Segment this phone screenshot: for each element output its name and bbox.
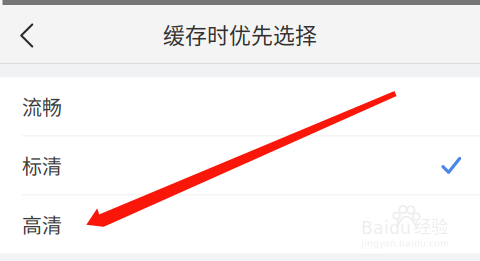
button[interactable]: 流畅 bbox=[0, 77, 480, 135]
staticText: 高清 bbox=[22, 210, 62, 239]
staticText: Baidu bbox=[361, 218, 411, 238]
staticText: 标清 bbox=[22, 151, 62, 180]
staticText: 流畅 bbox=[22, 92, 62, 121]
staticText: 缓存时优先选择 bbox=[163, 18, 317, 50]
button[interactable]: 标清 bbox=[0, 136, 480, 194]
button[interactable]: 高清 bbox=[0, 195, 480, 253]
button[interactable]: Back bbox=[5, 10, 49, 57]
staticText: jingyan.baidu.com bbox=[361, 238, 449, 249]
staticText: 经验 bbox=[414, 213, 448, 238]
